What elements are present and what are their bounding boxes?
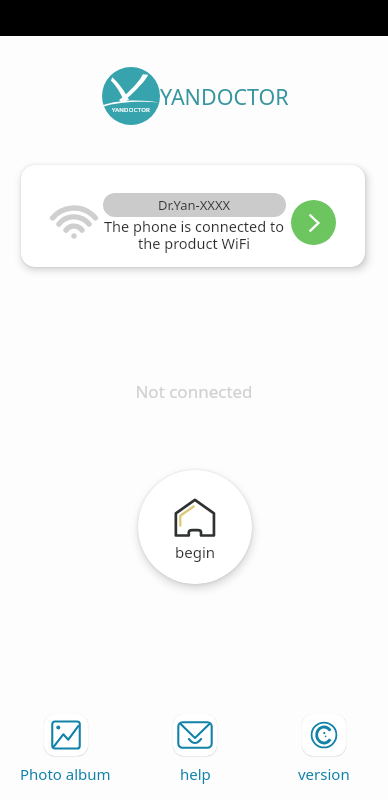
staticText: YANDOCTOR: [160, 82, 289, 111]
staticText: begin: [138, 542, 252, 562]
button[interactable]: version: [298, 714, 350, 784]
staticText: The phone is connected to the product Wi…: [97, 216, 291, 253]
staticText: version: [298, 764, 350, 784]
button[interactable]: begin: [138, 470, 252, 584]
staticText: Dr.Yan-XXXX: [158, 196, 231, 214]
staticText: help: [180, 764, 211, 784]
staticText: Photo album: [20, 764, 111, 784]
staticText: YANDOCTOR: [102, 106, 160, 114]
staticText: Not connected: [0, 380, 388, 403]
button[interactable]: Photo album: [20, 714, 111, 784]
button[interactable]: Dr.Yan-XXXX: [21, 165, 365, 267]
button[interactable]: Next: [291, 200, 336, 245]
button[interactable]: help: [173, 714, 217, 784]
